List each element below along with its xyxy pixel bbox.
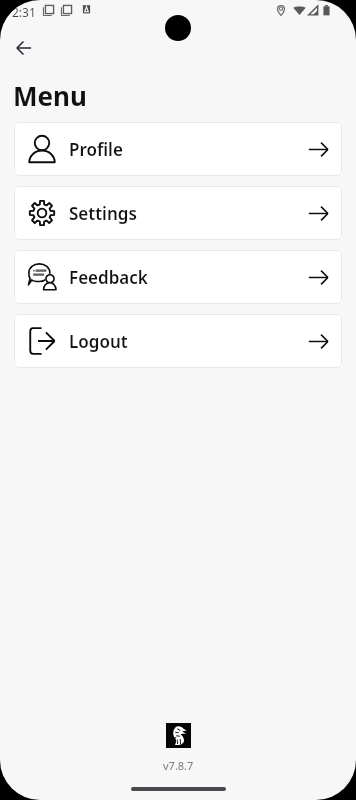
staticText: v7.8.7 — [163, 758, 194, 773]
button[interactable]: Logout — [14, 314, 342, 368]
staticText: 2:31 — [12, 4, 36, 20]
staticText: Feedback — [69, 266, 148, 289]
button[interactable]: Back — [0, 24, 47, 71]
staticText: Logout — [69, 330, 128, 353]
staticText: Menu — [13, 78, 87, 113]
staticText: Settings — [69, 202, 137, 225]
staticText: Profile — [69, 138, 123, 161]
button[interactable]: Profile — [14, 122, 342, 176]
button[interactable]: Feedback — [14, 250, 342, 304]
button[interactable]: Settings — [14, 186, 342, 240]
